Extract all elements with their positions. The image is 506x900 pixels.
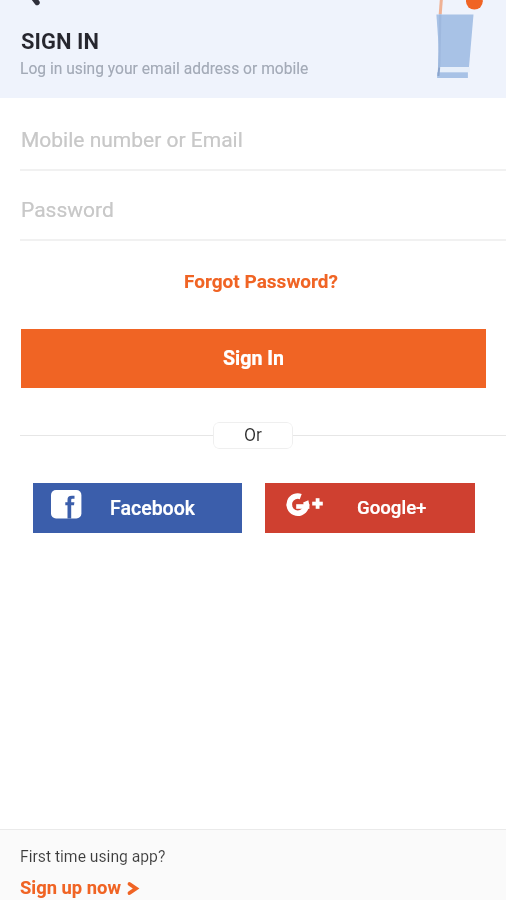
button[interactable]: Password (0, 186, 506, 232)
staticText: Forgot Password? (184, 270, 339, 292)
staticText: Mobile number or Email (21, 128, 243, 153)
staticText: Sign up now (20, 877, 122, 899)
button[interactable]: Facebook (33, 483, 242, 533)
staticText: SIGN IN (21, 29, 99, 55)
staticText: Sign In (223, 347, 284, 370)
button[interactable]: Sign In (21, 329, 486, 388)
staticText: First time using app? (20, 847, 166, 865)
staticText: Password (21, 198, 114, 223)
staticText: Facebook (110, 497, 195, 520)
button[interactable]: Sign up now (20, 877, 140, 899)
staticText: Google+ (357, 497, 427, 519)
button[interactable]: Back (14, 0, 48, 6)
button[interactable]: Mobile number or Email (0, 116, 506, 162)
button[interactable]: Forgot Password? (170, 266, 353, 296)
staticText: Or (244, 425, 262, 446)
staticText: Log in using your email address or mobil… (20, 60, 309, 78)
button[interactable]: Google+ (265, 483, 475, 533)
